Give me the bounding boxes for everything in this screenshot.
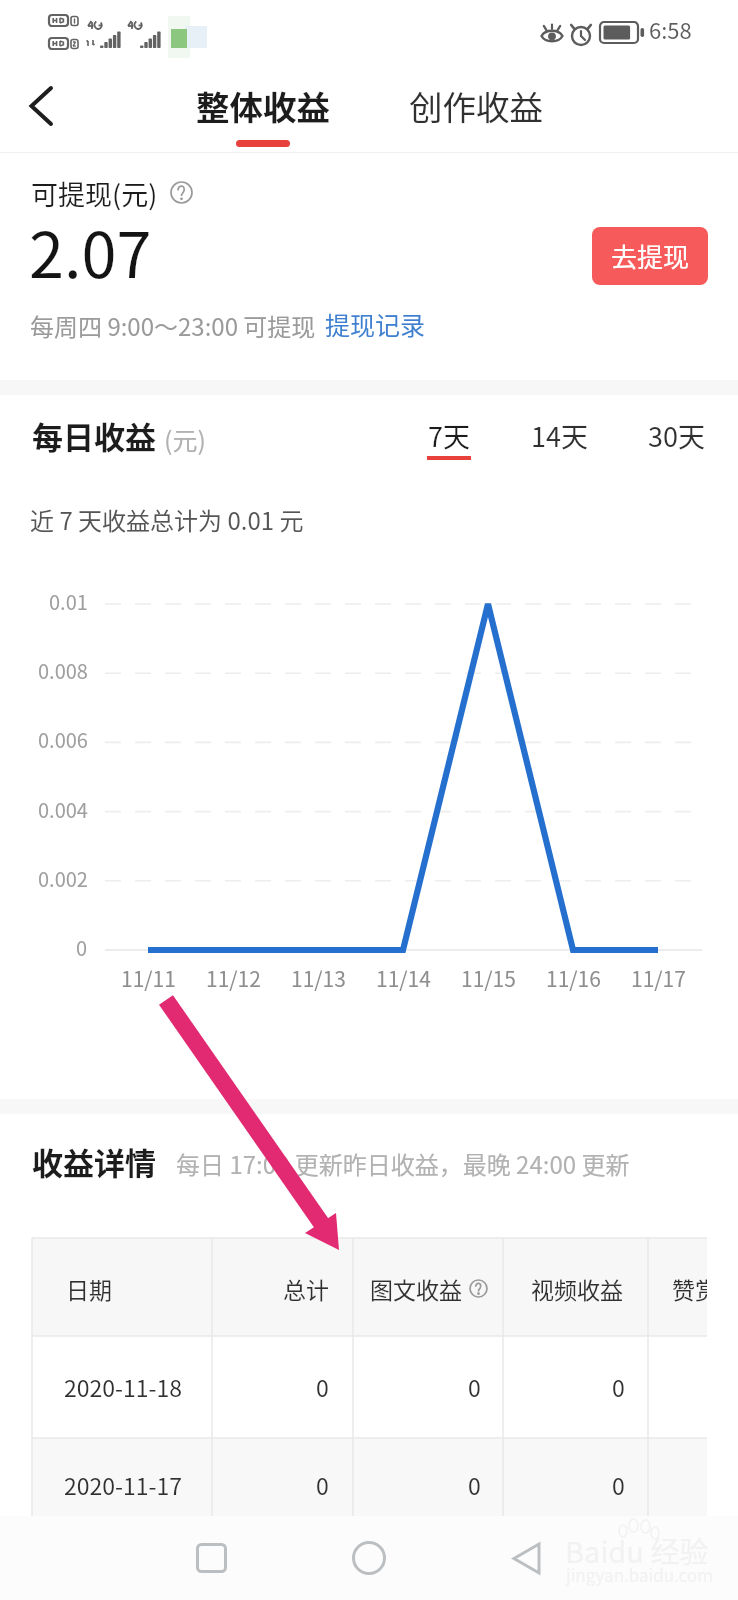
staticText: 14天 [531, 416, 588, 455]
button[interactable]: Recents [166, 1516, 256, 1600]
staticText: 0 [468, 1468, 481, 1501]
button[interactable]: 30天 [633, 410, 719, 460]
staticText: 0 [612, 1468, 625, 1501]
staticText: 0 [316, 1370, 329, 1403]
staticText: 0.004 [38, 795, 88, 824]
staticText: 0.008 [38, 656, 88, 685]
staticText: 11/11 [121, 963, 176, 993]
button[interactable]: 整体收益 [176, 72, 350, 138]
button[interactable]: Help [166, 177, 196, 207]
staticText: 7天 [428, 416, 470, 455]
staticText: 11/14 [376, 963, 431, 993]
staticText: 6:58 [649, 13, 692, 45]
staticText: 近 7 天收益总计为 0.01 元 [30, 502, 304, 537]
staticText: 11/13 [291, 963, 346, 993]
staticText: 整体收益 [196, 81, 330, 130]
staticText: 0 [76, 933, 88, 962]
staticText: 视频收益 [531, 1272, 623, 1305]
staticText: jingyan.baidu.com [566, 1562, 713, 1587]
staticText: 11/16 [546, 963, 601, 993]
staticText: 收益详情 [32, 1139, 156, 1184]
button[interactable]: 创作收益 [389, 72, 563, 138]
staticText: 11/17 [631, 963, 686, 993]
staticText: 0 [468, 1370, 481, 1403]
staticText: 赞赏 [672, 1272, 707, 1305]
staticText: 11/15 [461, 963, 516, 993]
staticText: 2.07 [29, 205, 152, 296]
staticText: 创作收益 [409, 81, 543, 130]
button[interactable]: 7天 [414, 410, 484, 460]
staticText: 30天 [648, 416, 705, 455]
staticText: 总计 [283, 1272, 329, 1305]
staticText: 0 [612, 1370, 625, 1403]
button[interactable]: Help [465, 1275, 492, 1302]
staticText: 提现记录 [325, 306, 426, 342]
button[interactable]: Back [481, 1516, 571, 1600]
button[interactable]: 去提现 [592, 227, 708, 285]
staticText: 0.006 [38, 725, 88, 754]
staticText: 日期 [66, 1272, 112, 1305]
staticText: 每日收益 [32, 413, 156, 458]
staticText: 2020-11-18 [64, 1370, 183, 1403]
staticText: 0.002 [38, 864, 88, 893]
staticText: 每周四 9:00～23:00 可提现 [30, 308, 316, 343]
staticText: 0 [316, 1468, 329, 1501]
staticText: 0.01 [49, 587, 88, 616]
staticText: 去提现 [611, 237, 690, 275]
button[interactable]: Home [324, 1516, 414, 1600]
staticText: (元) [164, 421, 206, 457]
button[interactable]: 14天 [516, 410, 602, 460]
staticText: 2020-11-17 [64, 1468, 183, 1501]
staticText: Baidu 经验 [565, 1529, 709, 1571]
staticText: 图文收益 [370, 1272, 462, 1305]
staticText: 可提现(元) [31, 174, 158, 213]
staticText: 每日 17:00 更新昨日收益，最晚 24:00 更新 [176, 1146, 630, 1181]
button[interactable]: 提现记录 [322, 306, 428, 346]
button[interactable]: Back [14, 76, 72, 134]
staticText: 11/12 [206, 963, 261, 993]
